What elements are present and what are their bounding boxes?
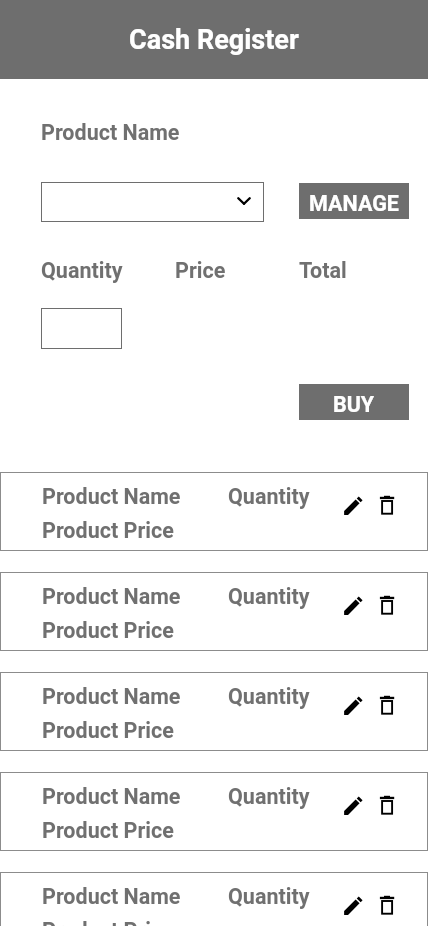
button[interactable]: Select product: [41, 182, 264, 222]
staticText: Product Price: [42, 518, 174, 543]
button[interactable]: Delete: [373, 891, 401, 919]
staticText: BUY: [333, 392, 375, 417]
button[interactable]: Product Name: [0, 472, 428, 551]
button[interactable]: Edit: [339, 591, 367, 619]
button[interactable]: Product Name: [0, 772, 428, 851]
staticText: Product Name: [42, 484, 181, 509]
staticText: Product Name: [42, 884, 181, 909]
button[interactable]: Quantity input: [41, 308, 122, 349]
staticText: Quantity: [228, 584, 310, 609]
staticText: MANAGE: [309, 191, 399, 216]
button[interactable]: Edit: [339, 691, 367, 719]
staticText: Product Name: [42, 784, 181, 809]
staticText: Quantity: [228, 684, 310, 709]
staticText: Product Price: [42, 618, 174, 643]
staticText: Product Name: [41, 120, 180, 145]
button[interactable]: Edit: [339, 791, 367, 819]
staticText: Product Price: [42, 918, 174, 926]
staticText: Quantity: [41, 258, 123, 283]
button[interactable]: BUY: [299, 384, 409, 420]
button[interactable]: Product Name: [0, 872, 428, 926]
button[interactable]: Delete: [373, 791, 401, 819]
button[interactable]: Delete: [373, 491, 401, 519]
button[interactable]: Product Name: [0, 572, 428, 651]
button[interactable]: Delete: [373, 591, 401, 619]
staticText: Quantity: [228, 784, 310, 809]
button[interactable]: Product Name: [0, 672, 428, 751]
staticText: Quantity: [228, 484, 310, 509]
staticText: Product Price: [42, 718, 174, 743]
staticText: Product Name: [42, 684, 181, 709]
staticText: Price: [175, 258, 226, 283]
button[interactable]: Edit: [339, 491, 367, 519]
staticText: Total: [299, 258, 347, 283]
staticText: Cash Register: [129, 24, 299, 56]
staticText: Product Price: [42, 818, 174, 843]
button[interactable]: Edit: [339, 891, 367, 919]
button[interactable]: MANAGE: [299, 183, 409, 219]
button[interactable]: Delete: [373, 691, 401, 719]
staticText: Quantity: [228, 884, 310, 909]
staticText: Product Name: [42, 584, 181, 609]
